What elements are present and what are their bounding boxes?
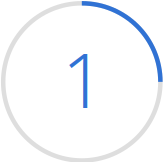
staticText: 1 bbox=[62, 29, 105, 129]
button[interactable]: 1 of 4 complete bbox=[0, 0, 163, 162]
